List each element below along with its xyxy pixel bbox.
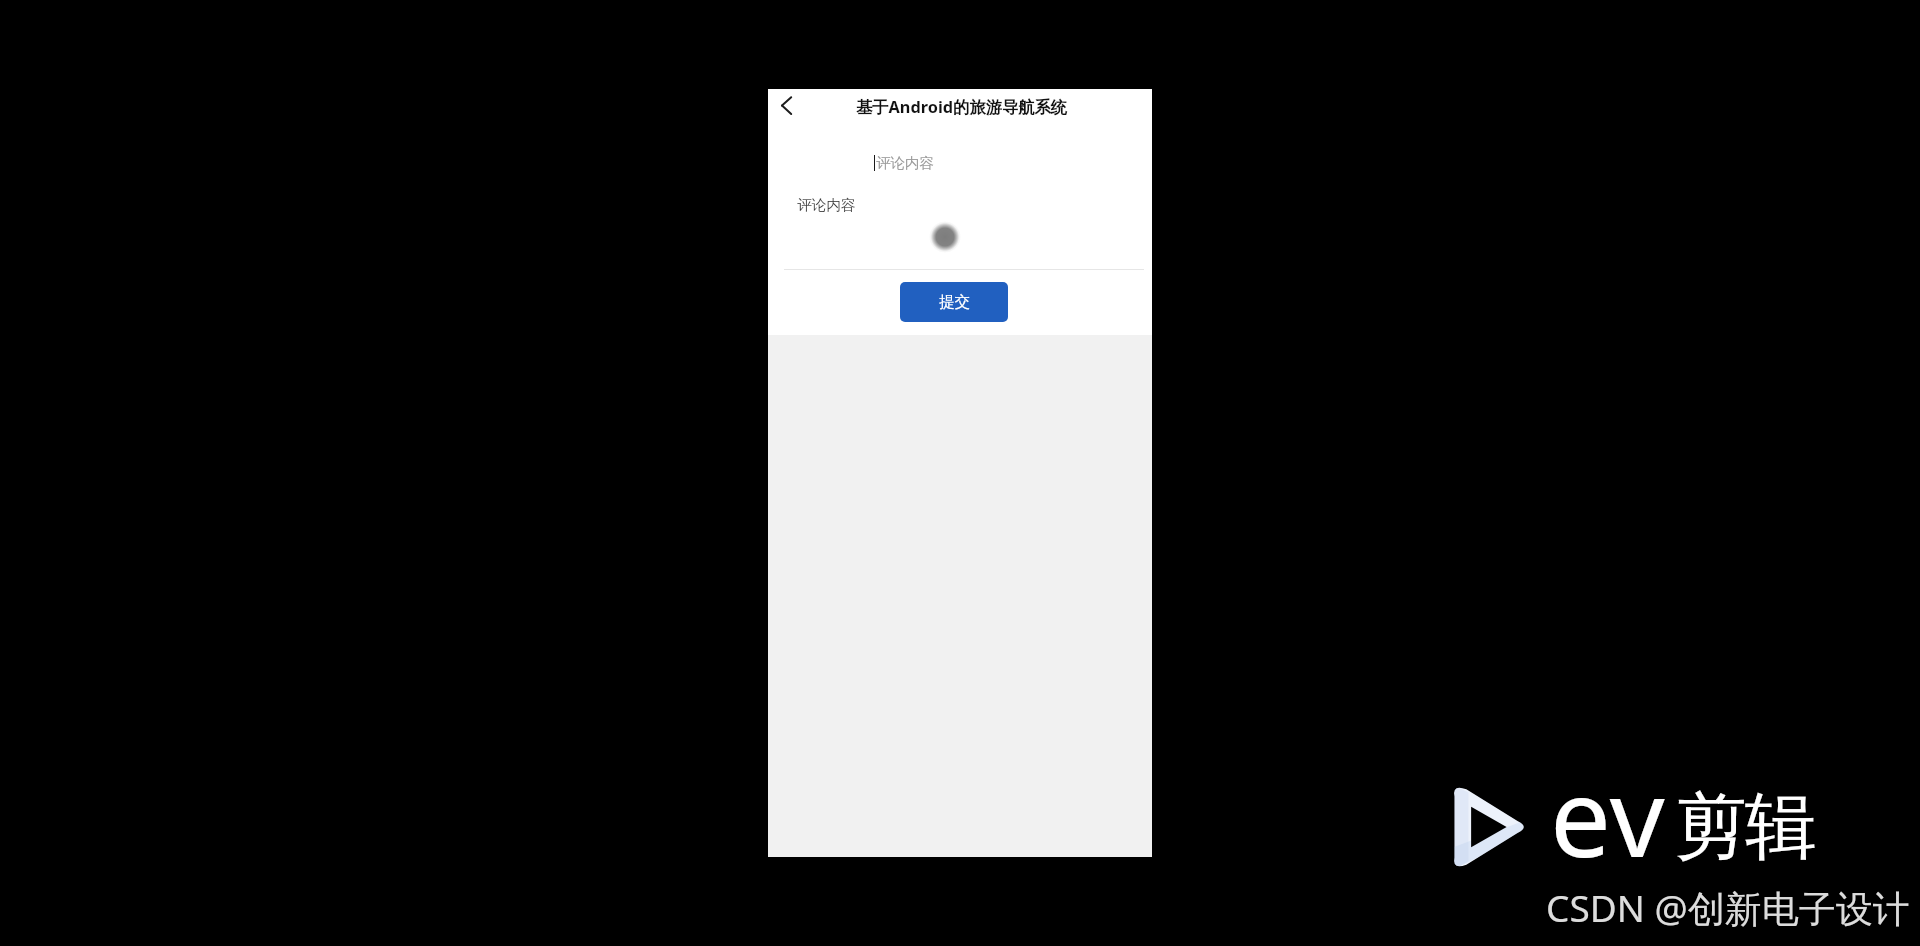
button[interactable]: 评论内容 input <box>874 146 1034 180</box>
button[interactable]: 提交 <box>900 282 1008 322</box>
staticText: 评论内容 <box>876 154 934 172</box>
button[interactable]: Back <box>768 89 802 123</box>
staticText: ev <box>1550 742 1666 889</box>
staticText: 提交 <box>939 292 970 312</box>
staticText: 评论内容 <box>797 196 856 215</box>
staticText: 剪辑 <box>1676 782 1816 873</box>
staticText: 基于Android的旅游导航系统 <box>856 96 1068 118</box>
staticText: CSDN @创新电子设计 <box>1546 882 1910 933</box>
